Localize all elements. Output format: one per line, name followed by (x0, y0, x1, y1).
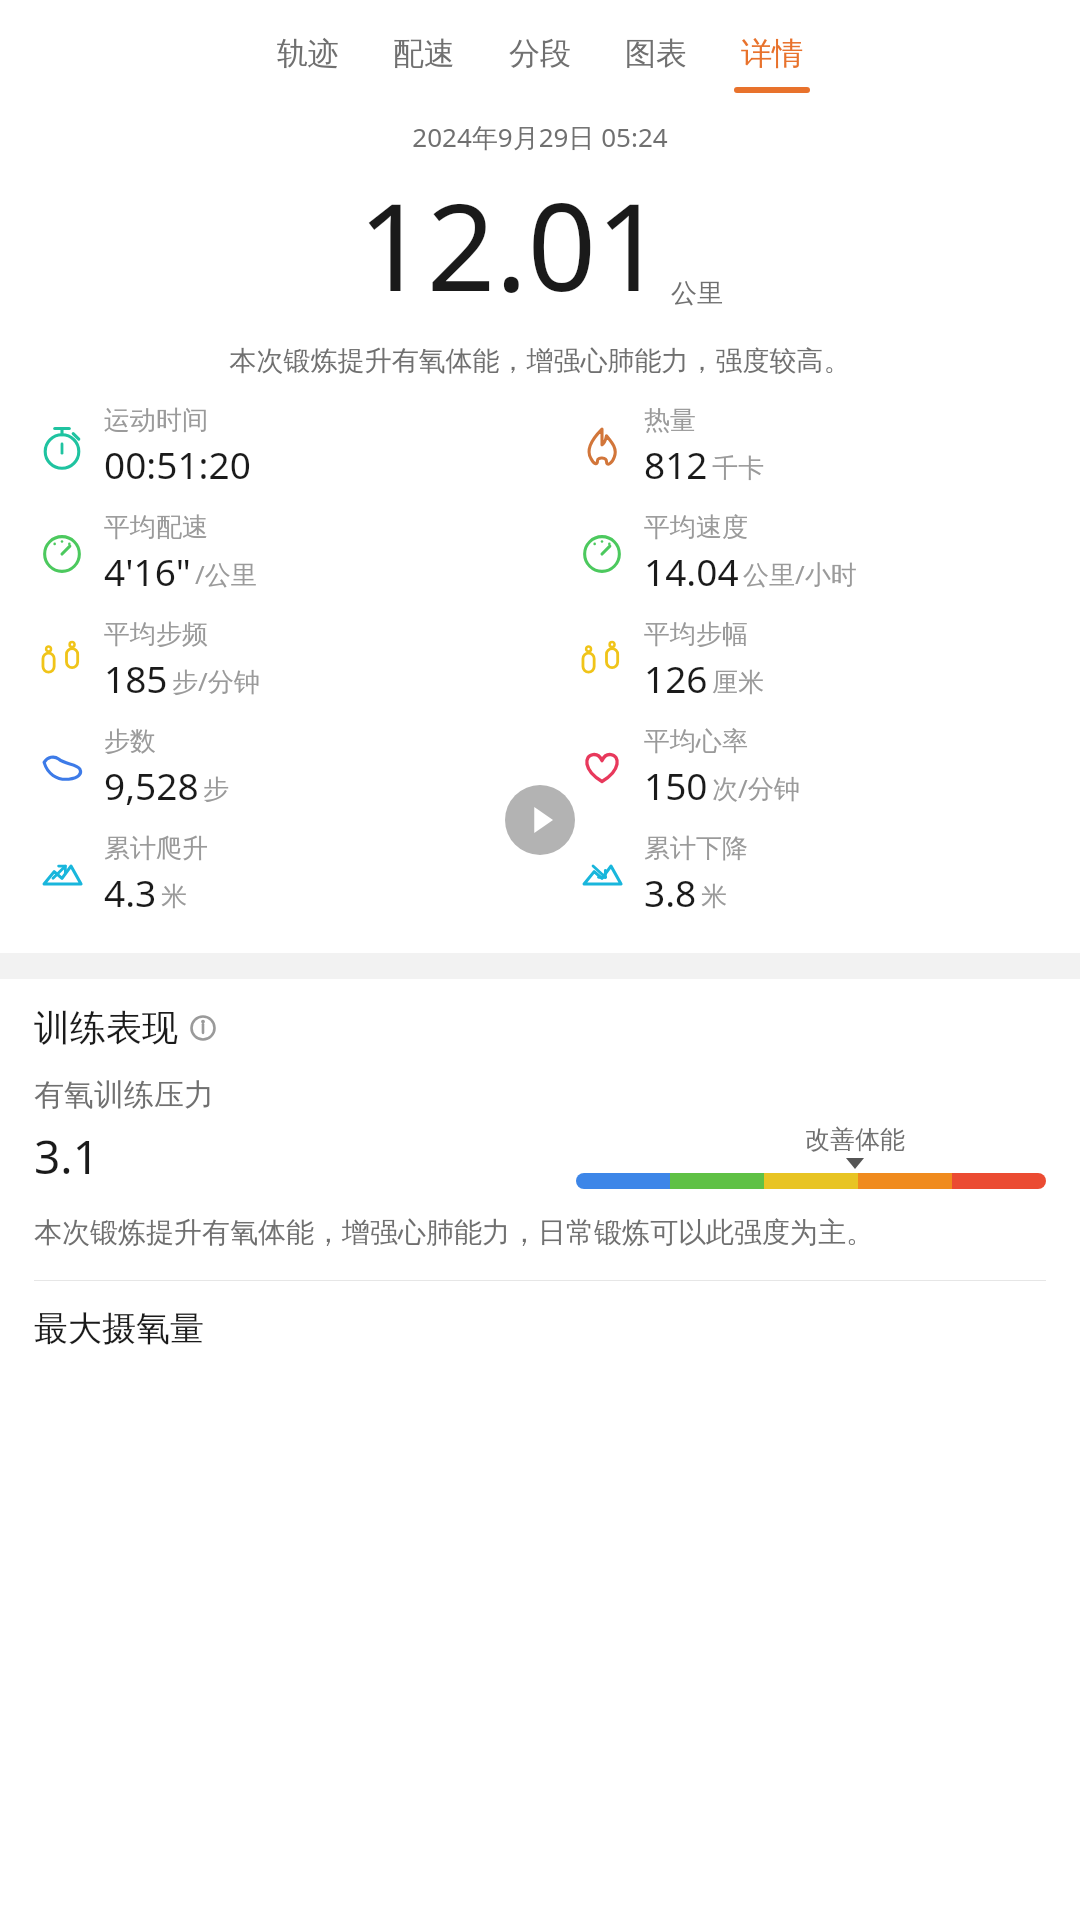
button[interactable]: 图表 (598, 30, 714, 97)
button[interactable]: 平均步频 (0, 618, 540, 703)
staticText: 图表 (625, 34, 687, 73)
staticText: 厘米 (712, 666, 764, 699)
staticText: 次/分钟 (712, 770, 800, 806)
button[interactable]: Play (505, 785, 575, 855)
staticText: 平均步幅 (644, 618, 748, 651)
staticText: 最大摄氧量 (34, 1307, 204, 1350)
button[interactable]: 平均速度 (540, 511, 1080, 596)
staticText: 150 (644, 760, 708, 810)
button[interactable]: 轨迹 (250, 30, 366, 97)
staticText: 00:51:20 (104, 439, 251, 489)
staticText: 米 (701, 880, 727, 913)
staticText: 2024年9月29日 05:24 (0, 119, 1080, 155)
button[interactable]: 步数 (0, 725, 540, 810)
staticText: 126 (644, 653, 708, 703)
staticText: 有氧训练压力 (34, 1076, 214, 1114)
staticText: 运动时间 (104, 404, 208, 437)
button[interactable]: 热量 (540, 404, 1080, 489)
staticText: 本次锻炼提升有氧体能，增强心肺能力，日常锻炼可以此强度为主。 (34, 1215, 1046, 1250)
button[interactable]: 运动时间 (0, 404, 540, 489)
staticText: 4.3 (104, 867, 157, 917)
staticText: 热量 (644, 404, 696, 437)
staticText: 详情 (741, 34, 803, 73)
staticText: 分段 (509, 34, 571, 73)
staticText: 配速 (393, 34, 455, 73)
button[interactable]: 平均配速 (0, 511, 540, 596)
staticText: 公里 (671, 277, 723, 310)
button[interactable]: 累计爬升 (0, 832, 540, 917)
staticText: 训练表现 (34, 1005, 178, 1050)
button[interactable]: 累计下降 (540, 832, 1080, 917)
staticText: 公里/小时 (743, 556, 857, 592)
staticText: 平均心率 (644, 725, 748, 758)
staticText: 9,528 (104, 760, 199, 810)
other: Info (190, 1015, 216, 1041)
staticText: 改善体能 (805, 1124, 905, 1155)
staticText: 千卡 (712, 452, 764, 485)
staticText: 3.1 (34, 1125, 99, 1188)
staticText: 累计爬升 (104, 832, 208, 865)
staticText: 步 (203, 773, 229, 806)
staticText: 812 (644, 439, 708, 489)
staticText: 12.01 (358, 163, 665, 326)
button[interactable]: 训练表现 (34, 1005, 216, 1050)
staticText: 平均速度 (644, 511, 748, 544)
staticText: 3.8 (644, 867, 697, 917)
staticText: 本次锻炼提升有氧体能，增强心肺能力，强度较高。 (0, 344, 1080, 378)
button[interactable]: 配速 (366, 30, 482, 97)
staticText: 步/分钟 (172, 663, 260, 699)
staticText: 轨迹 (277, 34, 339, 73)
staticText: /公里 (195, 556, 257, 592)
staticText: 4'16" (104, 546, 191, 596)
staticText: 平均配速 (104, 511, 208, 544)
button[interactable]: 详情 (714, 30, 830, 97)
staticText: 185 (104, 653, 168, 703)
staticText: 累计下降 (644, 832, 748, 865)
staticText: 步数 (104, 725, 156, 758)
button[interactable]: 平均步幅 (540, 618, 1080, 703)
button[interactable]: 分段 (482, 30, 598, 97)
button[interactable]: 平均心率 (540, 725, 1080, 810)
staticText: 平均步频 (104, 618, 208, 651)
staticText: 14.04 (644, 546, 739, 596)
staticText: 米 (161, 880, 187, 913)
